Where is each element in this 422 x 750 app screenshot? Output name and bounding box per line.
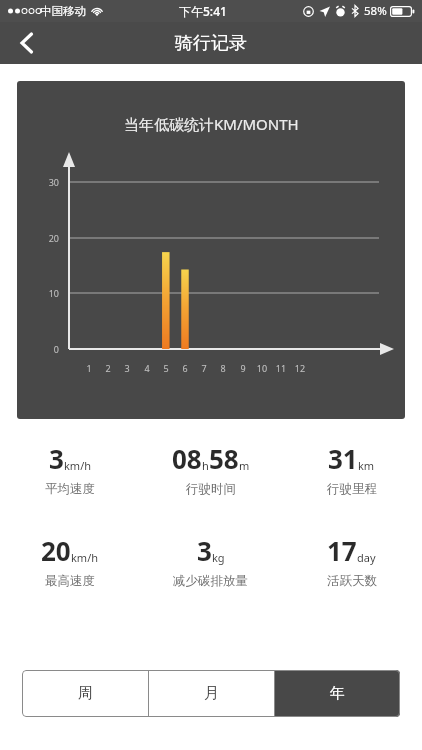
button[interactable]: 3 bbox=[140, 533, 281, 589]
staticText: 58% bbox=[364, 3, 387, 19]
staticText: 6 bbox=[175, 362, 195, 374]
staticText: 7 bbox=[194, 362, 214, 374]
staticText: 3 bbox=[197, 533, 212, 568]
staticText: 周 bbox=[78, 684, 93, 703]
staticText: 活跃天数 bbox=[327, 573, 377, 589]
staticText: 最高速度 bbox=[45, 573, 95, 589]
staticText: 3 bbox=[49, 441, 64, 476]
staticText: 58 bbox=[209, 441, 239, 476]
button[interactable]: 3 bbox=[0, 441, 140, 497]
staticText: 减少碳排放量 bbox=[173, 573, 248, 589]
staticText: 2 bbox=[98, 362, 118, 374]
staticText: day bbox=[357, 550, 376, 565]
staticText: 12 bbox=[290, 362, 310, 374]
staticText: km/h bbox=[64, 458, 92, 473]
button[interactable]: 年 bbox=[275, 670, 400, 717]
staticText: 9 bbox=[233, 362, 253, 374]
staticText: 中国移动 bbox=[40, 4, 86, 18]
staticText: m bbox=[239, 458, 250, 473]
button[interactable]: 31 bbox=[281, 441, 422, 497]
staticText: 0 bbox=[35, 343, 59, 355]
staticText: 31 bbox=[328, 441, 358, 476]
staticText: h bbox=[202, 458, 209, 473]
staticText: 行驶时间 bbox=[186, 481, 236, 497]
button[interactable]: 月 bbox=[149, 670, 274, 717]
staticText: 月 bbox=[204, 684, 219, 703]
staticText: 20 bbox=[35, 232, 59, 244]
staticText: 10 bbox=[35, 287, 59, 299]
staticText: 4 bbox=[137, 362, 157, 374]
staticText: 10 bbox=[252, 362, 272, 374]
staticText: km/h bbox=[71, 550, 99, 565]
staticText: 30 bbox=[35, 176, 59, 188]
staticText: 当年低碳统计KM/MONTH bbox=[124, 114, 299, 134]
button[interactable]: 20 bbox=[0, 533, 140, 589]
button[interactable]: 17 bbox=[281, 533, 422, 589]
staticText: 8 bbox=[213, 362, 233, 374]
staticText: kg bbox=[212, 550, 225, 565]
staticText: 08 bbox=[172, 441, 202, 476]
button[interactable]: Back bbox=[0, 22, 52, 64]
staticText: 骑行记录 bbox=[175, 32, 247, 55]
staticText: 年 bbox=[330, 684, 345, 703]
staticText: 20 bbox=[41, 533, 71, 568]
staticText: 3 bbox=[117, 362, 137, 374]
staticText: 11 bbox=[271, 362, 291, 374]
staticText: 行驶里程 bbox=[327, 481, 377, 497]
staticText: 5 bbox=[156, 362, 176, 374]
staticText: 1 bbox=[79, 362, 99, 374]
staticText: 下午5:41 bbox=[179, 3, 227, 19]
button[interactable]: 周 bbox=[22, 670, 148, 717]
staticText: 平均速度 bbox=[45, 481, 95, 497]
staticText: 17 bbox=[327, 533, 357, 568]
button[interactable]: 08 bbox=[140, 441, 281, 497]
staticText: km bbox=[358, 458, 375, 473]
